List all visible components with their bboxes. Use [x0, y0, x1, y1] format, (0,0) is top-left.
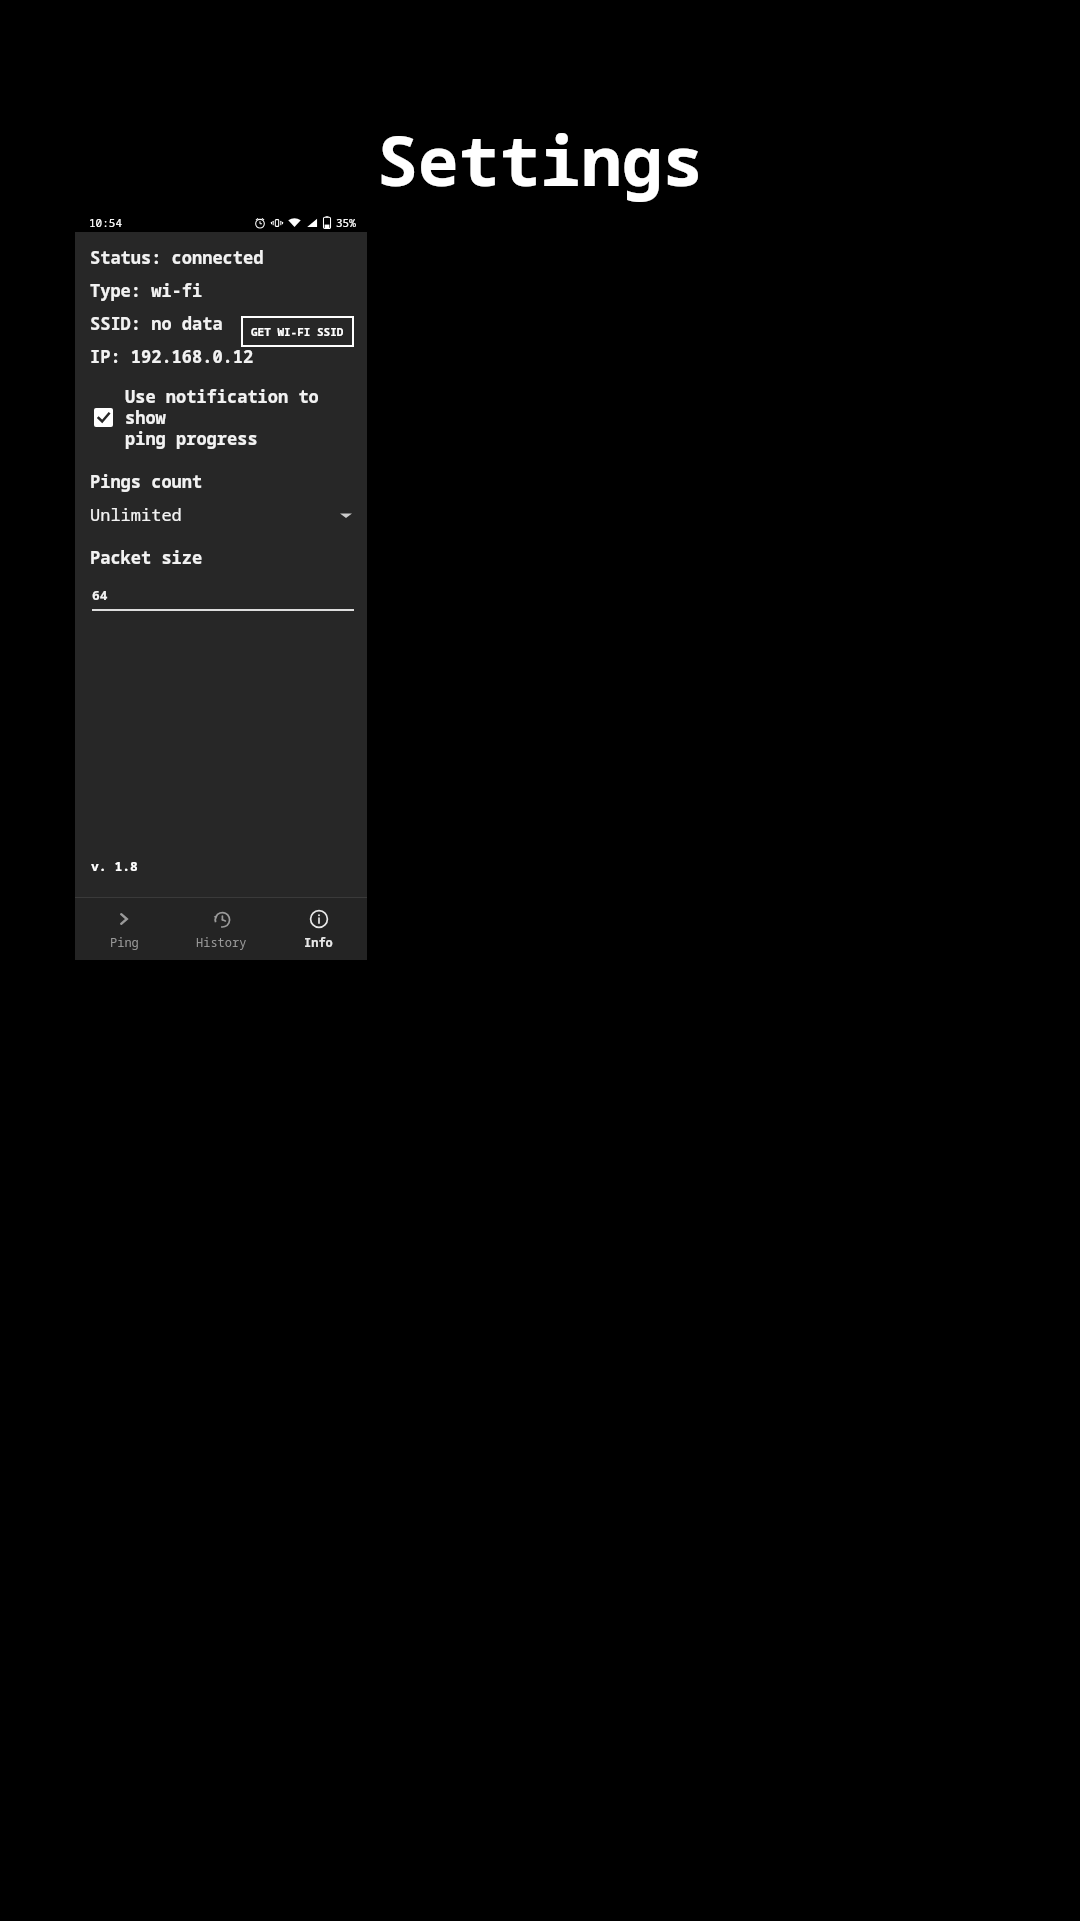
staticText: v. 1.8	[91, 857, 138, 875]
staticText: History	[196, 934, 247, 950]
staticText: IP: 192.168.0.12	[90, 345, 254, 368]
button[interactable]: Unlimited	[90, 503, 354, 526]
staticText: 10:54	[89, 215, 122, 230]
staticText: Ping	[110, 934, 139, 950]
staticText: Pings count	[90, 470, 203, 493]
staticText: Settings	[377, 113, 704, 206]
staticText: SSID: no data	[90, 312, 223, 335]
button[interactable]: Ping	[75, 898, 173, 960]
button[interactable]: 64	[90, 586, 354, 611]
staticText: 35%	[336, 215, 356, 230]
staticText: Type: wi-fi	[90, 279, 203, 302]
button[interactable]: History	[173, 898, 270, 960]
staticText: GET WI-FI SSID	[251, 324, 344, 339]
staticText: 64	[92, 586, 108, 604]
staticText: Status: connected	[90, 246, 264, 269]
staticText: Use notification to show ping progress	[125, 385, 354, 450]
staticText: Unlimited	[90, 503, 340, 526]
staticText: Packet size	[90, 546, 203, 569]
staticText: Info	[304, 934, 333, 950]
button[interactable]: GET WI-FI SSID	[241, 316, 354, 347]
button[interactable]: Use notification to show ping progress	[90, 383, 354, 452]
button[interactable]: Info	[270, 898, 367, 960]
